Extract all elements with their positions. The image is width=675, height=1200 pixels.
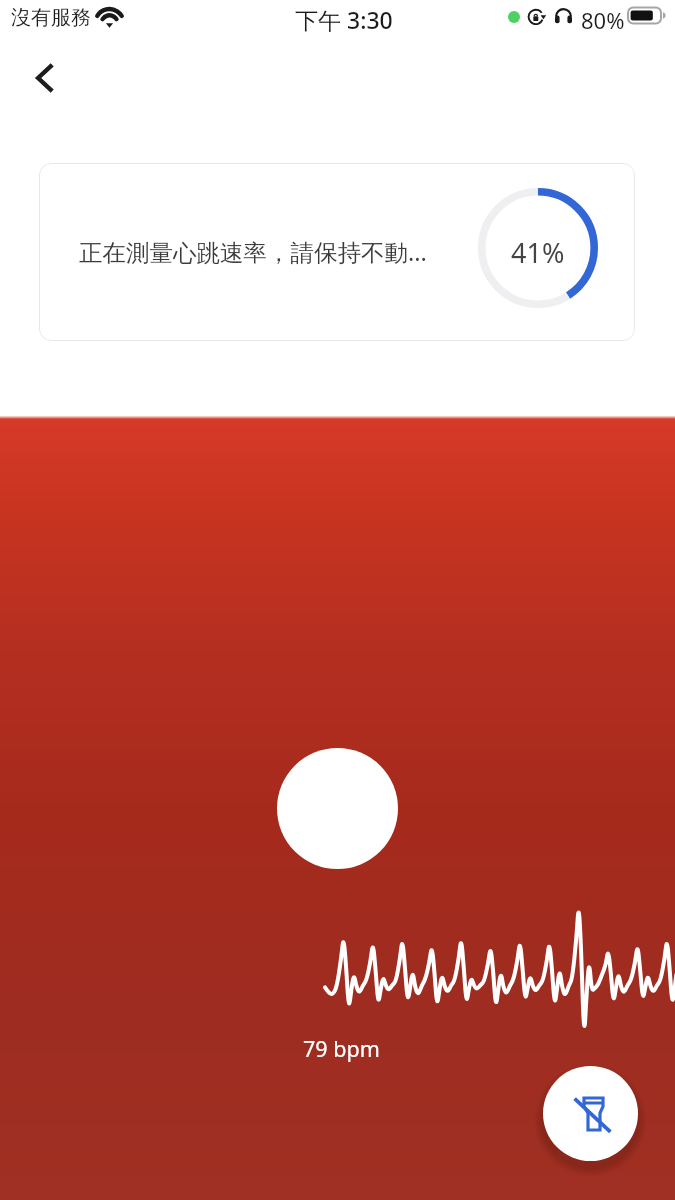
button[interactable]: 正在測量心跳速率，請保持不動... xyxy=(39,163,635,341)
button[interactable]: Flashlight off xyxy=(543,1066,638,1161)
staticText: 80% xyxy=(581,5,625,35)
staticText: 正在測量心跳速率，請保持不動... xyxy=(79,236,427,268)
staticText: 79 bpm xyxy=(303,1034,380,1063)
button[interactable]: Back xyxy=(21,54,69,102)
staticText: 沒有服務 xyxy=(11,5,91,30)
staticText: 下午 3:30 xyxy=(295,4,393,35)
staticText: 41% xyxy=(511,234,565,271)
